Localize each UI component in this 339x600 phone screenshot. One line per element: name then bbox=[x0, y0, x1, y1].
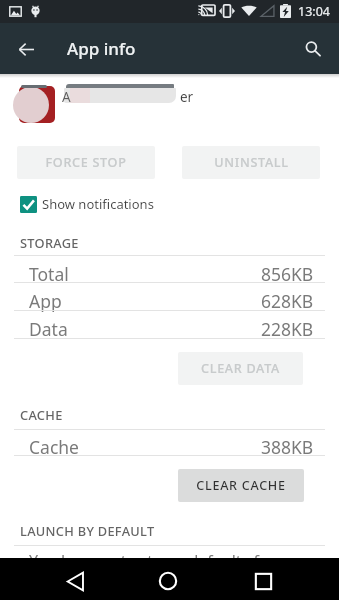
staticText: App info bbox=[67, 37, 136, 60]
staticText: App bbox=[29, 289, 62, 313]
staticText: LAUNCH BY DEFAULT bbox=[20, 522, 155, 539]
button[interactable]: Search bbox=[297, 33, 329, 65]
staticText: STORAGE bbox=[20, 234, 79, 251]
button[interactable]: Cache bbox=[0, 429, 339, 456]
button[interactable]: Home bbox=[146, 560, 190, 600]
staticText: 388KB bbox=[261, 435, 314, 459]
staticText: er bbox=[180, 88, 194, 106]
staticText: CLEAR CACHE bbox=[196, 477, 286, 494]
staticText: 628KB bbox=[261, 289, 314, 313]
staticText: A bbox=[62, 88, 71, 106]
button[interactable]: App bbox=[0, 283, 339, 310]
staticText: You have not set any defaults for bbox=[29, 550, 276, 572]
staticText: Data bbox=[29, 317, 68, 341]
button[interactable]: FORCE STOP bbox=[17, 146, 155, 179]
button[interactable]: Total bbox=[0, 256, 339, 283]
staticText: 856KB bbox=[261, 262, 314, 286]
staticText: CACHE bbox=[20, 406, 63, 423]
button[interactable]: Navigate up bbox=[10, 33, 42, 65]
staticText: 13:04 bbox=[298, 3, 330, 20]
staticText: Total bbox=[29, 262, 69, 286]
staticText: Cache bbox=[29, 435, 79, 459]
staticText: FORCE STOP bbox=[45, 154, 127, 171]
button[interactable]: Back bbox=[53, 560, 97, 600]
button[interactable]: CLEAR CACHE bbox=[178, 469, 304, 502]
staticText: 228KB bbox=[261, 317, 314, 341]
button[interactable]: Show notifications bbox=[0, 191, 339, 217]
staticText: UNINSTALL bbox=[214, 154, 289, 171]
button[interactable]: Recent apps bbox=[241, 560, 285, 600]
staticText: CLEAR DATA bbox=[201, 360, 280, 377]
button[interactable]: CLEAR DATA bbox=[178, 352, 303, 385]
button[interactable]: Data bbox=[0, 311, 339, 338]
staticText: Show notifications bbox=[42, 195, 154, 213]
button[interactable]: UNINSTALL bbox=[182, 146, 320, 179]
